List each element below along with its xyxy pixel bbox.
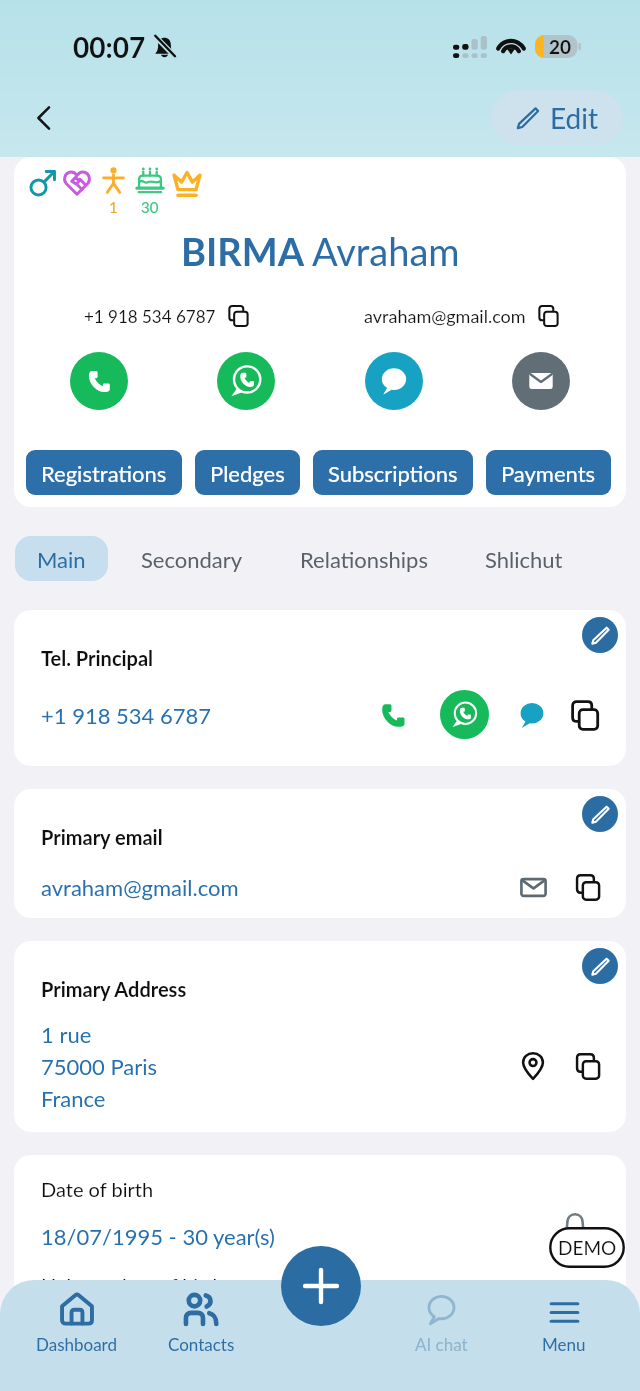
- button[interactable]: Email: [512, 352, 570, 410]
- staticText: Date of birth: [41, 1177, 154, 1201]
- button[interactable]: Send email: [515, 869, 551, 905]
- button[interactable]: Primary Address: [14, 941, 626, 1132]
- button[interactable]: Edit: [491, 91, 623, 145]
- staticText: Shlichut: [485, 546, 563, 572]
- staticText: Subscriptions: [328, 460, 458, 486]
- button[interactable]: Primary email: [14, 789, 626, 918]
- button[interactable]: Edit Tel. Principal: [582, 617, 618, 653]
- button[interactable]: Copy: [569, 1048, 605, 1084]
- staticText: Relationships: [300, 546, 428, 572]
- button[interactable]: Edit Primary email: [582, 796, 618, 832]
- button[interactable]: WhatsApp: [217, 352, 275, 410]
- staticText: avraham@gmail.com: [364, 305, 526, 327]
- button[interactable]: AI chat: [381, 1290, 501, 1360]
- button[interactable]: WhatsApp: [440, 690, 489, 739]
- button[interactable]: Chat: [365, 352, 423, 410]
- button[interactable]: Copy: [563, 694, 605, 736]
- button[interactable]: Registrations: [26, 450, 182, 495]
- button[interactable]: Main: [15, 536, 108, 581]
- button[interactable]: Tel. Principal: [14, 610, 626, 766]
- staticText: Menu: [542, 1334, 586, 1354]
- button[interactable]: Dashboard: [16, 1290, 136, 1360]
- button[interactable]: Edit Primary Address: [582, 948, 618, 984]
- button[interactable]: Secondary: [141, 536, 243, 581]
- button[interactable]: Menu: [504, 1290, 624, 1360]
- staticText: 18/07/1995 - 30 year(s): [41, 1223, 275, 1249]
- button[interactable]: Relationships: [300, 536, 428, 581]
- staticText: avraham@gmail.com: [41, 874, 239, 900]
- staticText: Edit: [550, 101, 599, 135]
- staticText: Registrations: [41, 460, 167, 486]
- staticText: Contacts: [168, 1334, 235, 1354]
- staticText: +1 918 534 6787: [41, 702, 212, 728]
- staticText: +1 918 534 6787: [84, 306, 216, 326]
- button[interactable]: Subscriptions: [313, 450, 473, 495]
- button[interactable]: Payments: [486, 450, 611, 495]
- staticText: Primary email: [41, 825, 163, 849]
- button[interactable]: Shlichut: [485, 536, 563, 581]
- button[interactable]: Call: [70, 352, 128, 410]
- staticText: Secondary: [141, 546, 243, 572]
- button[interactable]: Contacts: [141, 1290, 261, 1360]
- button[interactable]: Date of birth: [14, 1155, 626, 1335]
- button[interactable]: Back: [22, 96, 66, 140]
- staticText: Dashboard: [36, 1334, 117, 1354]
- staticText: Main: [37, 546, 86, 572]
- staticText: BIRMA: [181, 228, 312, 274]
- staticText: DEMO: [558, 1236, 617, 1259]
- staticText: 1: [109, 198, 118, 216]
- button[interactable]: Map: [515, 1048, 551, 1084]
- staticText: Payments: [501, 460, 596, 486]
- staticText: 1 rue: [41, 1021, 92, 1047]
- staticText: 20: [549, 35, 572, 58]
- staticText: AI chat: [415, 1334, 468, 1354]
- staticText: France: [41, 1085, 106, 1111]
- button[interactable]: Copy: [569, 869, 605, 905]
- staticText: 30: [141, 198, 159, 216]
- button[interactable]: Message: [511, 694, 553, 736]
- staticText: Avraham: [312, 228, 460, 274]
- staticText: 00:07: [73, 30, 146, 64]
- staticText: Primary Address: [41, 977, 187, 1001]
- button[interactable]: Add: [281, 1246, 361, 1326]
- button[interactable]: Call: [371, 693, 415, 737]
- staticText: Tel. Principal: [41, 646, 154, 670]
- staticText: Pledges: [210, 460, 285, 486]
- button[interactable]: Pledges: [195, 450, 300, 495]
- staticText: Hebrew date of birth: [41, 1273, 224, 1297]
- staticText: 75000 Paris: [41, 1053, 158, 1079]
